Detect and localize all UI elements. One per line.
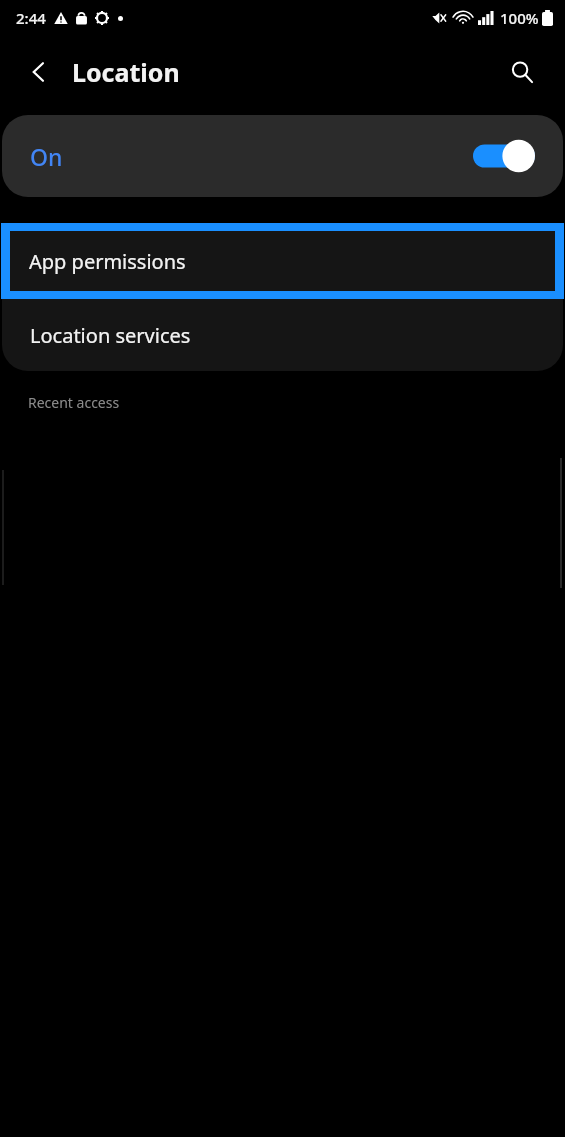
button[interactable]: Search	[499, 49, 545, 95]
staticText: Location services	[30, 322, 191, 349]
button[interactable]: On	[2, 115, 563, 197]
staticText: 100%	[500, 8, 539, 28]
staticText: Recent access	[28, 393, 120, 412]
staticText: On	[30, 141, 63, 172]
staticText: Location	[72, 55, 180, 89]
button[interactable]: Location services	[2, 299, 563, 371]
staticText: App permissions	[29, 248, 186, 275]
button[interactable]: App permissions	[1, 223, 564, 299]
button[interactable]: Back	[16, 49, 62, 95]
staticText: 2:44	[16, 8, 46, 28]
